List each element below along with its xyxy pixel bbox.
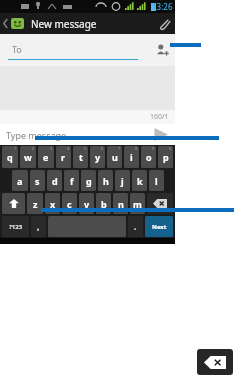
- staticText: r: [61, 151, 66, 163]
- button[interactable]: Type message: [6, 124, 145, 145]
- staticText: s: [35, 175, 40, 187]
- button[interactable]: a: [12, 170, 28, 191]
- staticText: v: [84, 198, 90, 210]
- button[interactable]: d: [47, 170, 62, 191]
- staticText: 5: [84, 146, 87, 151]
- staticText: j: [121, 175, 124, 187]
- staticText: a: [17, 175, 23, 187]
- staticText: o: [146, 151, 152, 163]
- button[interactable]: Backspace: [197, 349, 233, 375]
- staticText: 2: [32, 146, 35, 151]
- button[interactable]: e: [38, 146, 54, 168]
- button[interactable]: x: [45, 193, 60, 214]
- staticText: c: [67, 198, 72, 210]
- button[interactable]: p: [158, 146, 173, 168]
- button[interactable]: w: [20, 146, 36, 168]
- button[interactable]: n: [113, 193, 128, 214]
- staticText: To: [12, 43, 22, 55]
- staticText: 13:26: [152, 1, 173, 12]
- button[interactable]: To: [8, 41, 138, 60]
- staticText: q: [7, 151, 13, 163]
- staticText: f: [70, 175, 74, 187]
- staticText: k: [137, 175, 143, 187]
- staticText: b: [101, 198, 107, 210]
- button[interactable]: .: [128, 216, 143, 237]
- staticText: 8: [135, 146, 138, 151]
- staticText: w: [24, 151, 32, 163]
- button[interactable]: ,: [31, 216, 46, 237]
- button[interactable]: Send: [145, 124, 175, 145]
- staticText: 9: [152, 146, 155, 151]
- staticText: p: [163, 151, 169, 163]
- button[interactable]: l: [149, 170, 164, 191]
- button[interactable]: m: [130, 193, 145, 214]
- button[interactable]: h: [98, 170, 113, 191]
- staticText: 6: [101, 146, 104, 151]
- button[interactable]: Shift: [2, 193, 25, 214]
- button[interactable]: y: [90, 146, 105, 168]
- button[interactable]: Symbols: [2, 216, 29, 237]
- button[interactable]: Add recipient: [153, 41, 171, 59]
- staticText: m: [133, 198, 142, 210]
- staticText: h: [103, 175, 109, 187]
- button[interactable]: b: [96, 193, 111, 214]
- staticText: 1: [14, 146, 17, 151]
- staticText: y: [95, 151, 101, 163]
- staticText: e: [43, 151, 49, 163]
- staticText: 4: [67, 146, 70, 151]
- staticText: 0: [169, 146, 172, 151]
- button[interactable]: v: [79, 193, 94, 214]
- staticText: t: [79, 151, 83, 163]
- button[interactable]: r: [56, 146, 71, 168]
- button[interactable]: Attach: [153, 13, 175, 34]
- button[interactable]: g: [81, 170, 96, 191]
- button[interactable]: k: [132, 170, 147, 191]
- button[interactable]: j: [115, 170, 130, 191]
- staticText: d: [52, 175, 58, 187]
- button[interactable]: s: [30, 170, 45, 191]
- staticText: New message: [31, 17, 97, 31]
- staticText: l: [155, 175, 158, 187]
- button[interactable]: Navigate up: [0, 13, 26, 34]
- staticText: ?123: [9, 223, 23, 231]
- button[interactable]: f: [64, 170, 79, 191]
- staticText: 160/1: [150, 112, 169, 122]
- staticText: n: [118, 198, 124, 210]
- button[interactable]: i: [124, 146, 139, 168]
- button[interactable]: z: [27, 193, 43, 214]
- button[interactable]: Backspace: [147, 193, 173, 214]
- staticText: ,: [37, 221, 40, 232]
- staticText: Next: [152, 223, 167, 231]
- button[interactable]: Next: [145, 216, 173, 237]
- staticText: u: [112, 151, 118, 163]
- staticText: x: [50, 198, 56, 210]
- staticText: Type message: [6, 129, 67, 141]
- button[interactable]: q: [2, 146, 18, 168]
- button[interactable]: u: [107, 146, 122, 168]
- staticText: 7: [118, 146, 121, 151]
- staticText: g: [86, 175, 92, 187]
- button[interactable]: t: [73, 146, 88, 168]
- button[interactable]: c: [62, 193, 77, 214]
- staticText: 3: [50, 146, 53, 151]
- staticText: .: [134, 221, 137, 232]
- staticText: z: [33, 198, 38, 210]
- button[interactable]: o: [141, 146, 156, 168]
- staticText: i: [130, 151, 133, 163]
